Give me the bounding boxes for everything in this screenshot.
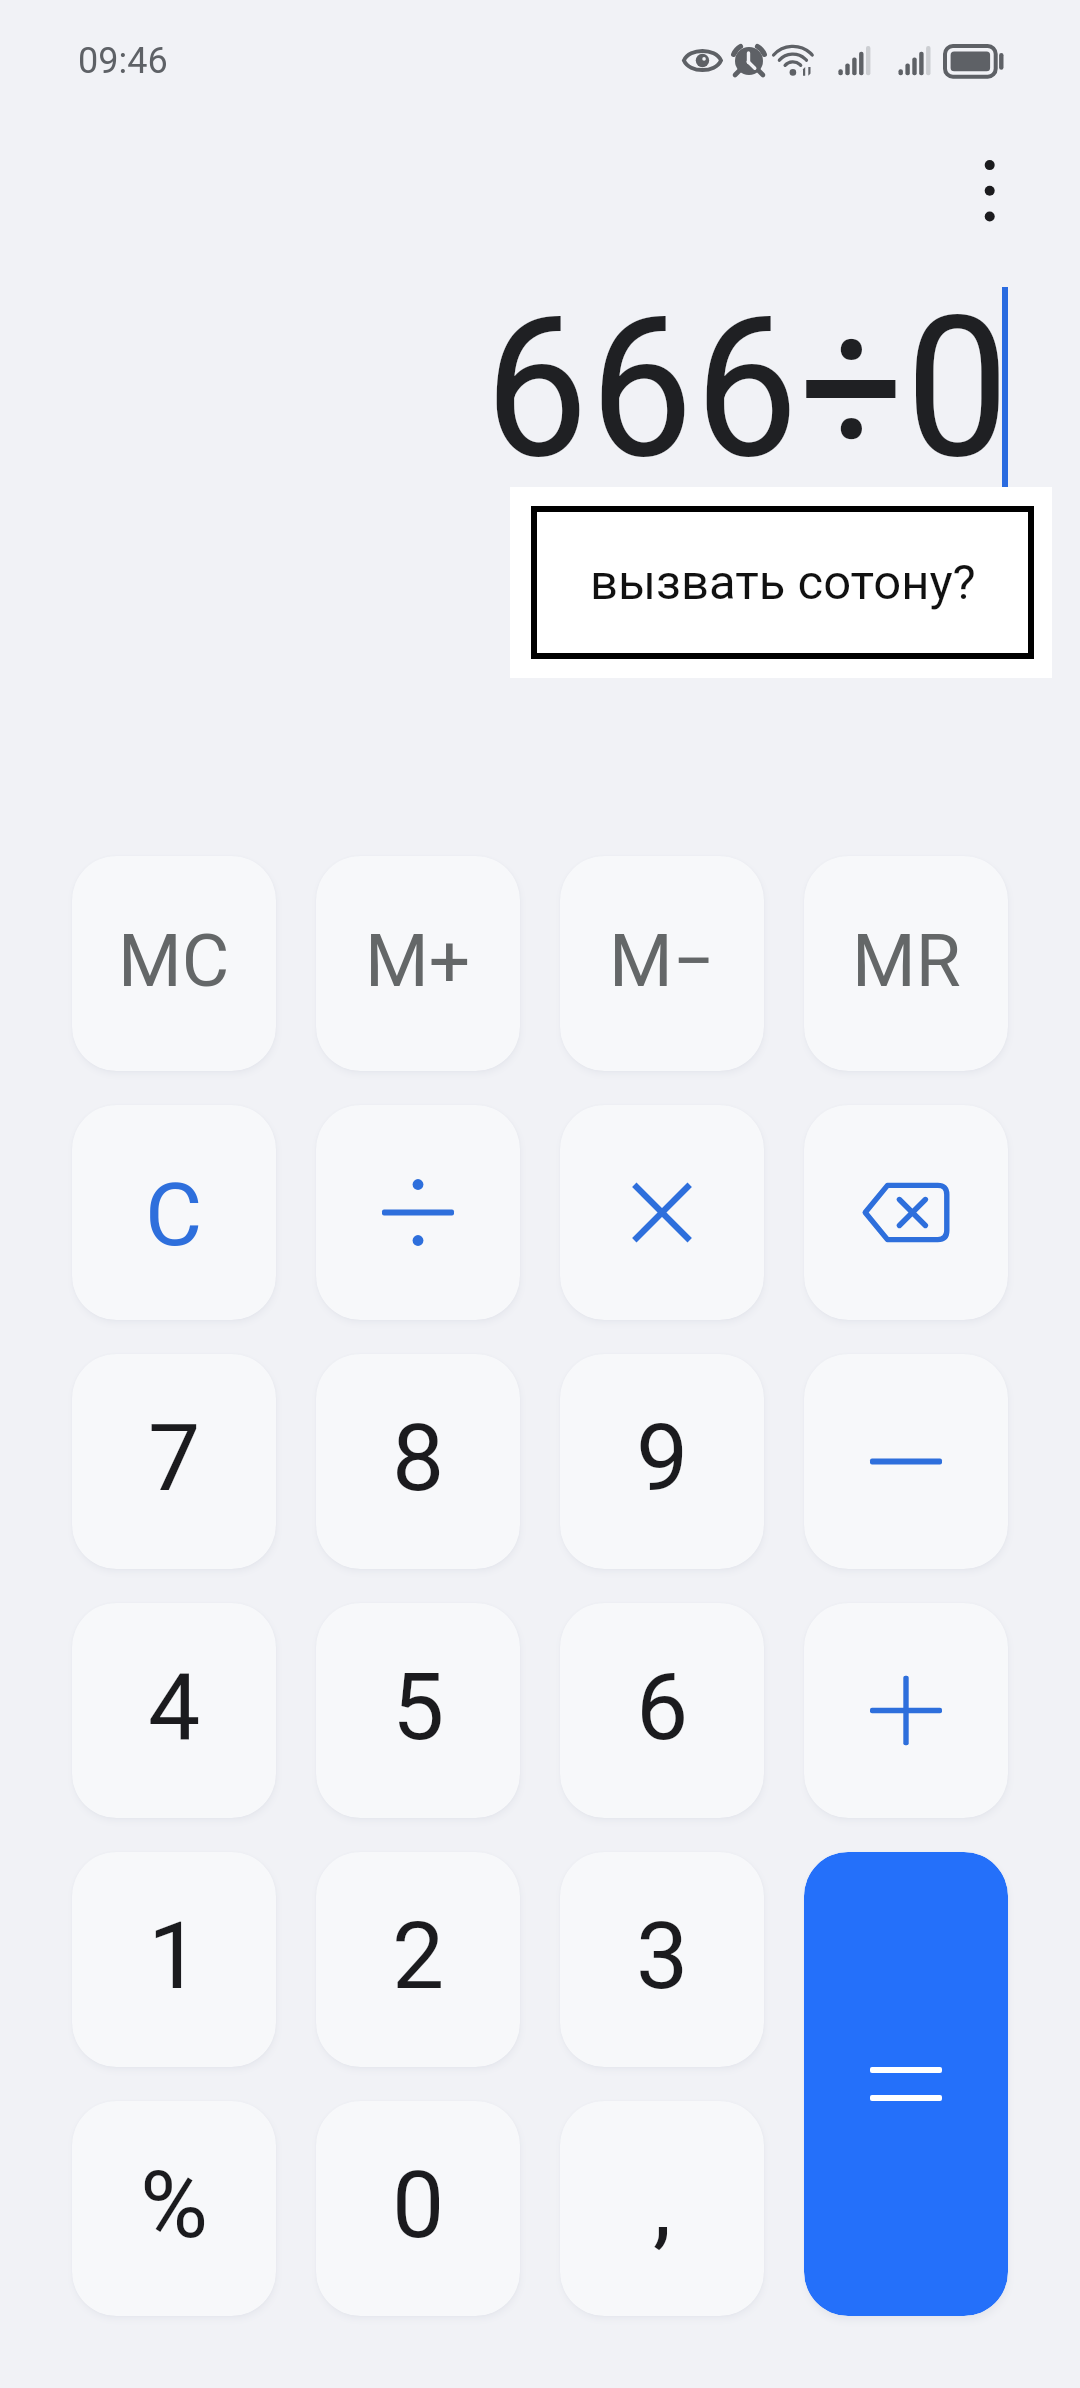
staticText: , — [653, 2151, 672, 2260]
staticText: 4 — [148, 1653, 201, 1762]
button[interactable]: 7 — [72, 1354, 276, 1569]
button[interactable]: C — [72, 1105, 276, 1320]
button[interactable]: More options — [930, 131, 1050, 251]
staticText: C — [145, 1163, 203, 1266]
button[interactable]: 3 — [560, 1852, 764, 2067]
button[interactable]: M+ — [316, 856, 520, 1071]
staticText: 9 — [636, 1404, 689, 1513]
button[interactable]: 8 — [316, 1354, 520, 1569]
staticText: 2 — [392, 1902, 445, 2011]
staticText: MR — [852, 918, 961, 1004]
button[interactable]: Equals — [804, 1852, 1008, 2316]
button[interactable]: Divide — [316, 1105, 520, 1320]
staticText: вызвать сотону? — [590, 554, 976, 611]
button[interactable]: Minus — [804, 1354, 1008, 1569]
button[interactable]: , — [560, 2101, 764, 2316]
button[interactable]: Plus — [804, 1603, 1008, 1818]
staticText: 7 — [148, 1404, 201, 1513]
button[interactable]: 2 — [316, 1852, 520, 2067]
button[interactable]: Backspace — [804, 1105, 1008, 1320]
staticText: 09:46 — [78, 40, 168, 82]
button[interactable]: 6 — [560, 1603, 764, 1818]
staticText: 5 — [392, 1653, 445, 1762]
button[interactable]: Multiply — [560, 1105, 764, 1320]
button[interactable]: 4 — [72, 1603, 276, 1818]
button[interactable]: 1 — [72, 1852, 276, 2067]
button[interactable]: 5 — [316, 1603, 520, 1818]
staticText: M+ — [365, 918, 471, 1004]
staticText: % — [140, 2151, 209, 2260]
staticText: M− — [609, 918, 715, 1004]
staticText: 0 — [392, 2151, 445, 2260]
staticText: 1 — [148, 1902, 201, 2011]
button[interactable]: 0 — [316, 2101, 520, 2316]
staticText: 8 — [392, 1404, 445, 1513]
staticText: MC — [118, 918, 230, 1004]
staticText: 6 — [636, 1653, 689, 1762]
button[interactable]: MR — [804, 856, 1008, 1071]
button[interactable]: 9 — [560, 1354, 764, 1569]
button[interactable]: MC — [72, 856, 276, 1071]
button[interactable]: % — [72, 2101, 276, 2316]
button[interactable]: M− — [560, 856, 764, 1071]
staticText: 3 — [636, 1902, 689, 2011]
